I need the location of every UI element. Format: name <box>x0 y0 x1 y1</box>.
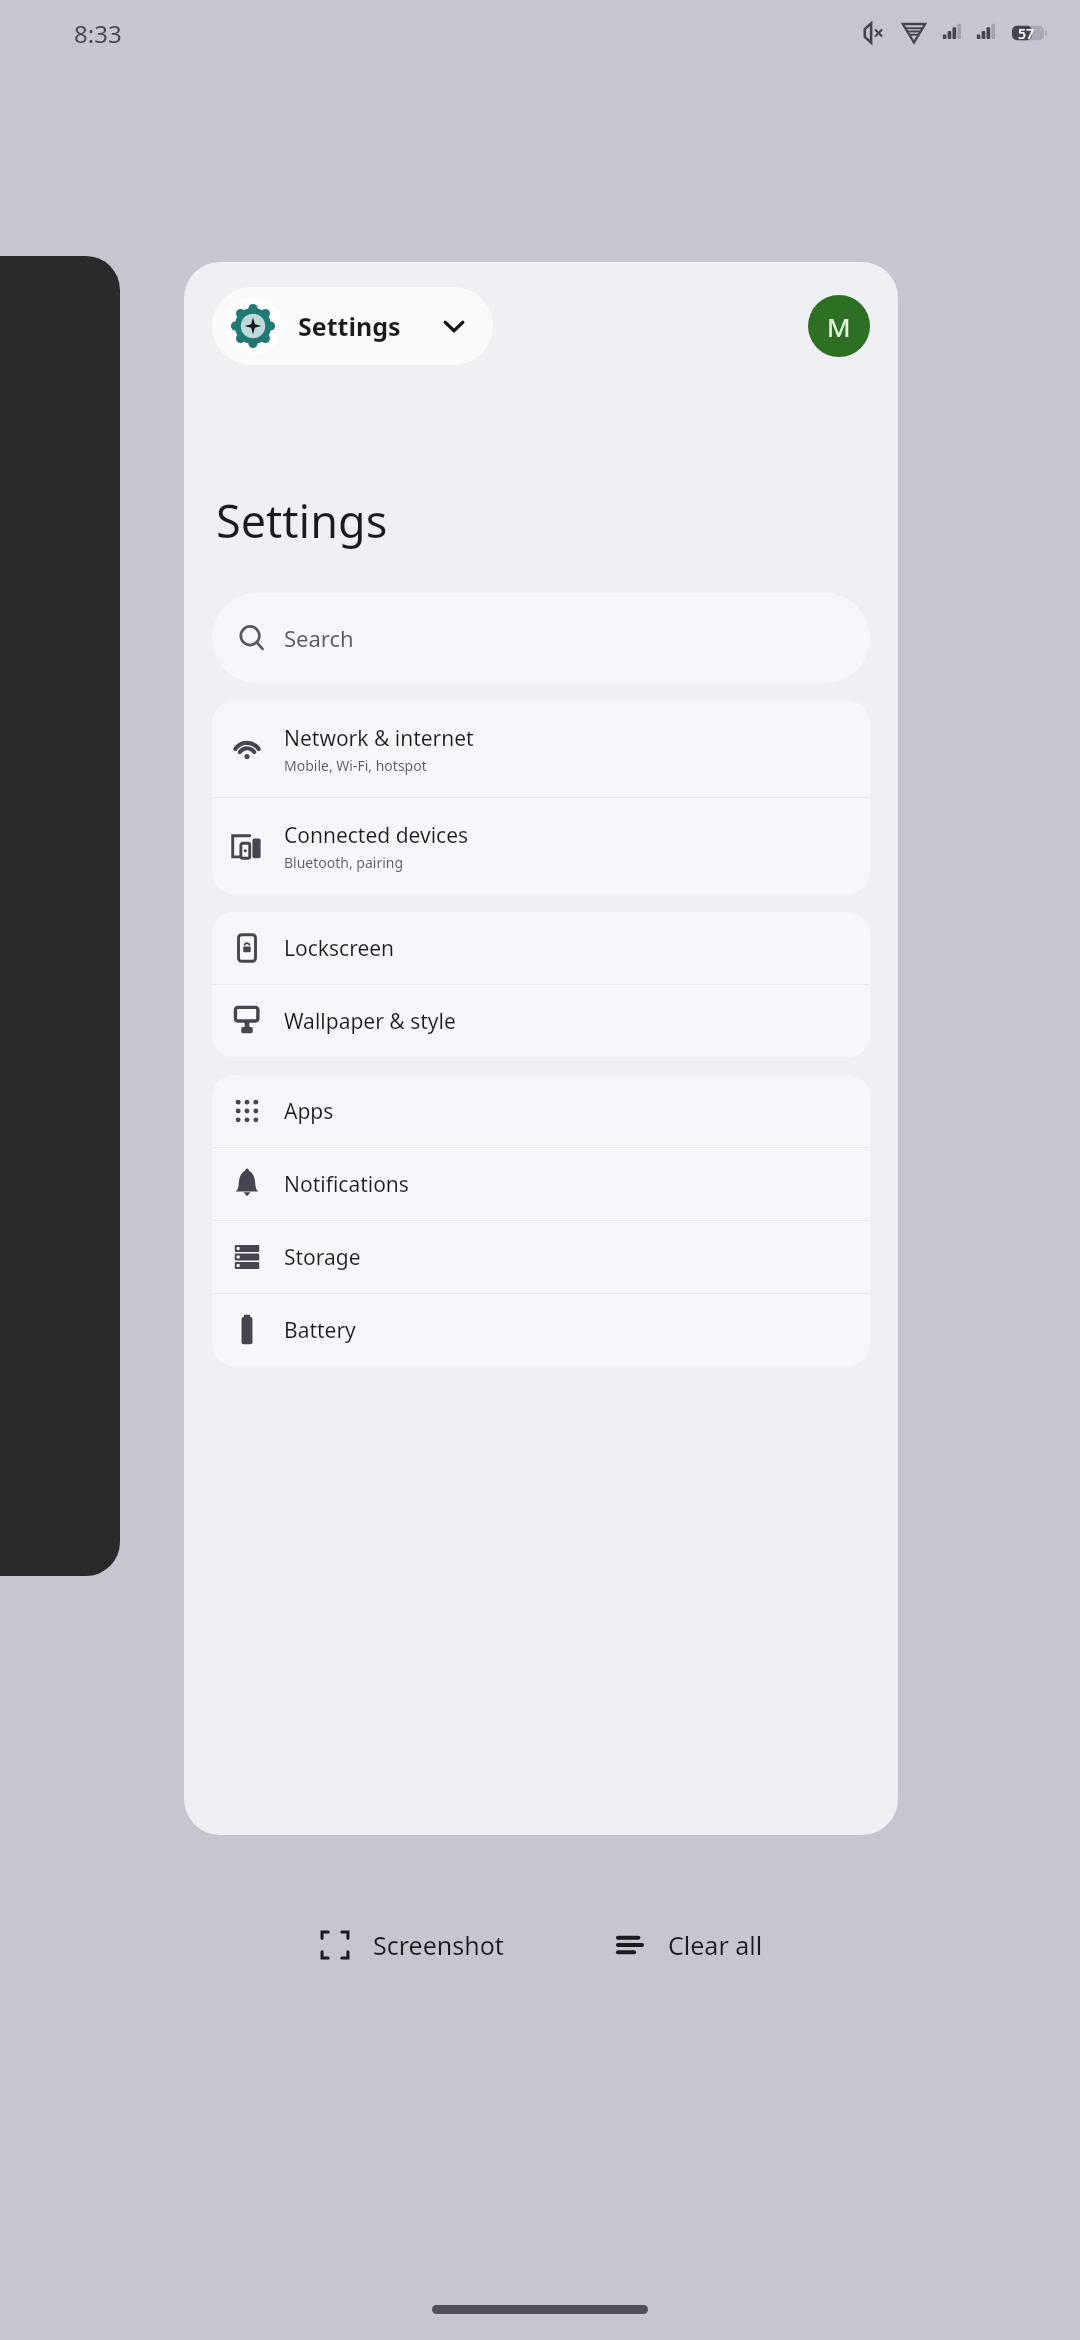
button[interactable]: Notifications <box>212 1148 870 1220</box>
button[interactable]: Settings <box>184 262 898 1835</box>
button[interactable]: Apps <box>212 1075 870 1147</box>
staticText: Clear all <box>668 1928 763 1962</box>
button[interactable]: Battery <box>212 1294 870 1366</box>
button[interactable]: Settings <box>212 287 493 365</box>
button[interactable]: Lockscreen <box>212 912 870 984</box>
staticText: Connected devices <box>284 821 469 850</box>
staticText: Settings <box>216 490 388 551</box>
button[interactable]: Clear all <box>598 1917 777 1973</box>
staticText: M <box>827 309 851 344</box>
button[interactable]: Search <box>212 593 870 683</box>
button[interactable]: Connected devices <box>212 798 870 894</box>
staticText: Lockscreen <box>284 934 395 963</box>
staticText: 57 <box>1018 24 1035 43</box>
staticText: 8:33 <box>74 17 122 50</box>
staticText: Network & internet <box>284 724 474 753</box>
staticText: Settings <box>298 309 401 343</box>
button[interactable]: Account <box>808 295 870 357</box>
staticText: Notifications <box>284 1170 409 1199</box>
staticText: Apps <box>284 1097 334 1126</box>
staticText: Screenshot <box>373 1928 504 1962</box>
staticText: Storage <box>284 1243 361 1272</box>
button[interactable]: Storage <box>212 1221 870 1293</box>
button[interactable]: Previous app <box>0 256 120 1576</box>
button[interactable]: Network & internet <box>212 701 870 797</box>
staticText: Battery <box>284 1316 356 1345</box>
staticText: Mobile, Wi-Fi, hotspot <box>284 756 427 775</box>
button[interactable]: Wallpaper & style <box>212 985 870 1057</box>
staticText: Search <box>284 623 354 653</box>
staticText: Bluetooth, pairing <box>284 853 404 872</box>
button[interactable]: Screenshot <box>303 1917 518 1973</box>
staticText: Wallpaper & style <box>284 1007 456 1036</box>
